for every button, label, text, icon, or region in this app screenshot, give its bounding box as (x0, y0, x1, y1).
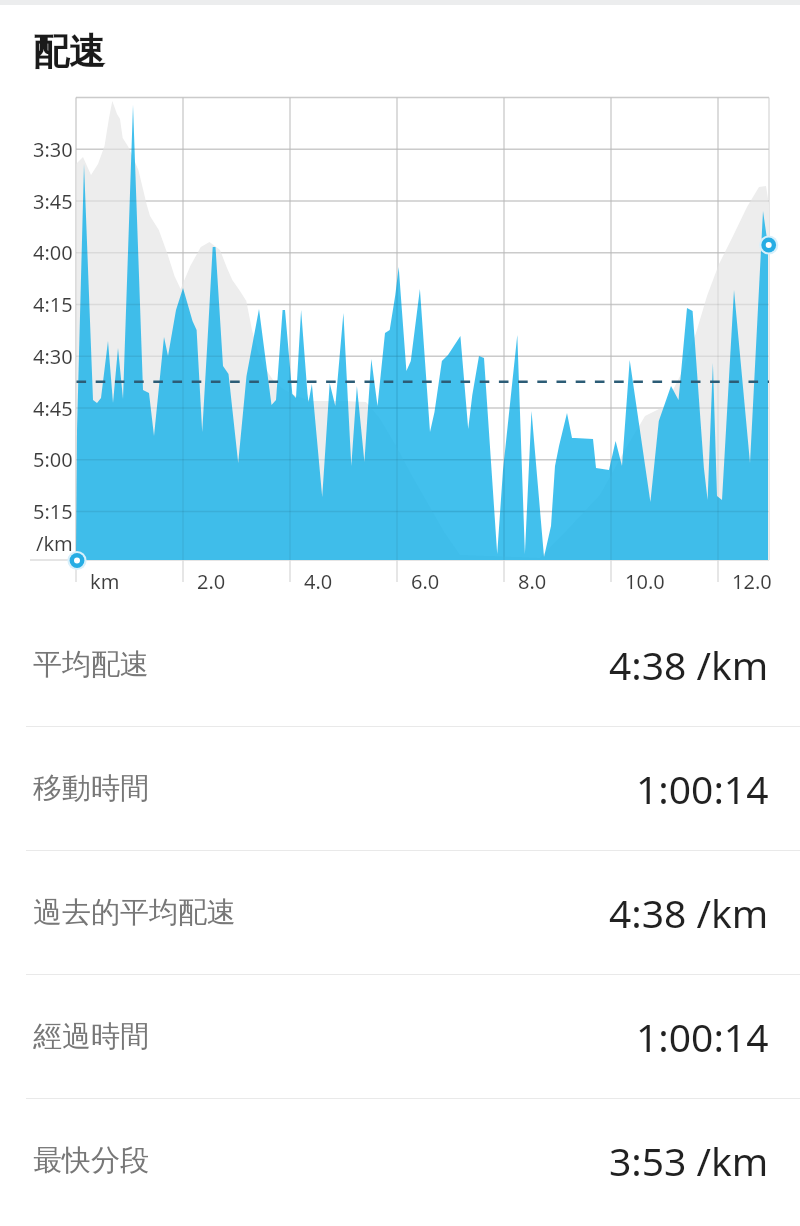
staticText: 配速 (33, 29, 105, 74)
button[interactable]: 移動時間 (0, 727, 800, 850)
staticText: 4:38 /km (609, 886, 769, 939)
button[interactable]: 平均配速 (0, 603, 800, 726)
staticText: 4:38 /km (609, 638, 769, 691)
button[interactable]: 過去的平均配速 (0, 851, 800, 974)
staticText: 平均配速 (33, 646, 149, 683)
staticText: 最快分段 (33, 1142, 149, 1179)
staticText: 移動時間 (33, 770, 149, 807)
staticText: 1:00:14 (636, 1010, 769, 1063)
staticText: 過去的平均配速 (33, 894, 236, 931)
staticText: 3:53 /km (609, 1134, 769, 1187)
button[interactable]: 最快分段 (0, 1099, 800, 1222)
staticText: 經過時間 (33, 1018, 149, 1055)
button[interactable]: 經過時間 (0, 975, 800, 1098)
staticText: 1:00:14 (636, 762, 769, 815)
